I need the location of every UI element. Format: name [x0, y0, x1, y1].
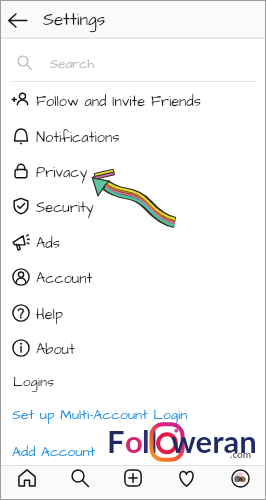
staticText: About	[36, 340, 75, 360]
staticText: Privacy	[36, 163, 88, 183]
staticText: Logins	[13, 372, 54, 391]
button[interactable]: New post	[109, 466, 157, 490]
button[interactable]: Account	[0, 259, 266, 294]
button[interactable]: Activity	[162, 466, 210, 490]
button[interactable]: Ads	[0, 224, 266, 259]
staticText: Security	[36, 198, 94, 218]
button[interactable]: Profile	[216, 466, 264, 490]
button[interactable]: Home	[3, 466, 51, 490]
staticText: Ads	[36, 234, 61, 254]
staticText: Settings	[43, 8, 106, 32]
staticText: weran	[171, 422, 257, 459]
button[interactable]: Help	[0, 295, 266, 330]
button[interactable]: Set up Multi-Account Login	[12, 405, 188, 424]
staticText: Help	[36, 305, 63, 325]
button[interactable]: Back	[4, 7, 31, 34]
button[interactable]: Security	[0, 188, 266, 223]
button[interactable]: Privacy	[0, 153, 266, 188]
staticText: F	[107, 422, 125, 459]
staticText: Notifications	[36, 128, 120, 148]
staticText: o	[125, 422, 143, 459]
button[interactable]: Follow and Invite Friends	[0, 82, 266, 117]
staticText: Follow and Invite Friends	[36, 92, 202, 112]
button[interactable]: Add Account	[12, 442, 96, 461]
staticText: Account	[36, 269, 93, 289]
staticText: Search	[50, 55, 94, 73]
button[interactable]: Notifications	[0, 118, 266, 153]
button[interactable]: About	[0, 330, 266, 365]
staticText: ll	[142, 422, 158, 459]
button[interactable]	[0, 45, 266, 79]
button[interactable]: Search	[56, 466, 104, 490]
staticText: .com	[230, 448, 252, 460]
